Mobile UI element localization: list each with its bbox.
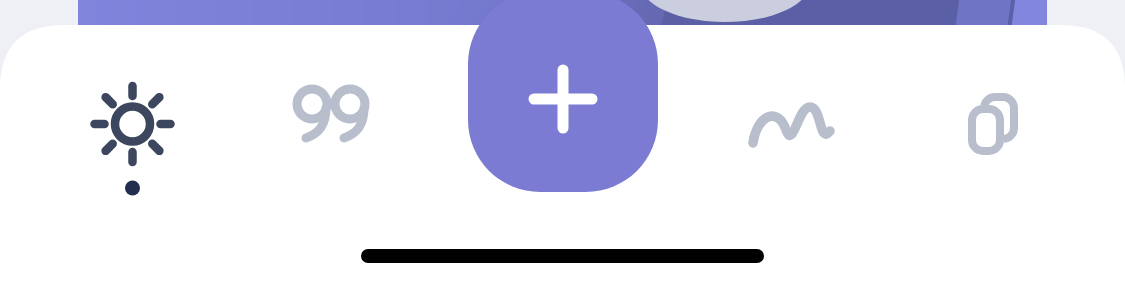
button[interactable]: Library — [958, 82, 1053, 177]
button[interactable]: Add — [468, 0, 658, 192]
button[interactable]: Brightness — [60, 52, 205, 197]
button[interactable]: Activity — [742, 86, 842, 166]
button[interactable]: Quotes — [288, 82, 383, 172]
